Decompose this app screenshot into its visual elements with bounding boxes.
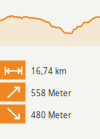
button[interactable]: 480 Meter	[0, 104, 100, 123]
button[interactable]: 16,74 km	[0, 60, 100, 79]
staticText: 480 Meter	[31, 110, 71, 121]
button[interactable]: 558 Meter	[0, 82, 100, 101]
staticText: 16,74 km	[31, 66, 66, 77]
staticText: 558 Meter	[31, 88, 71, 99]
